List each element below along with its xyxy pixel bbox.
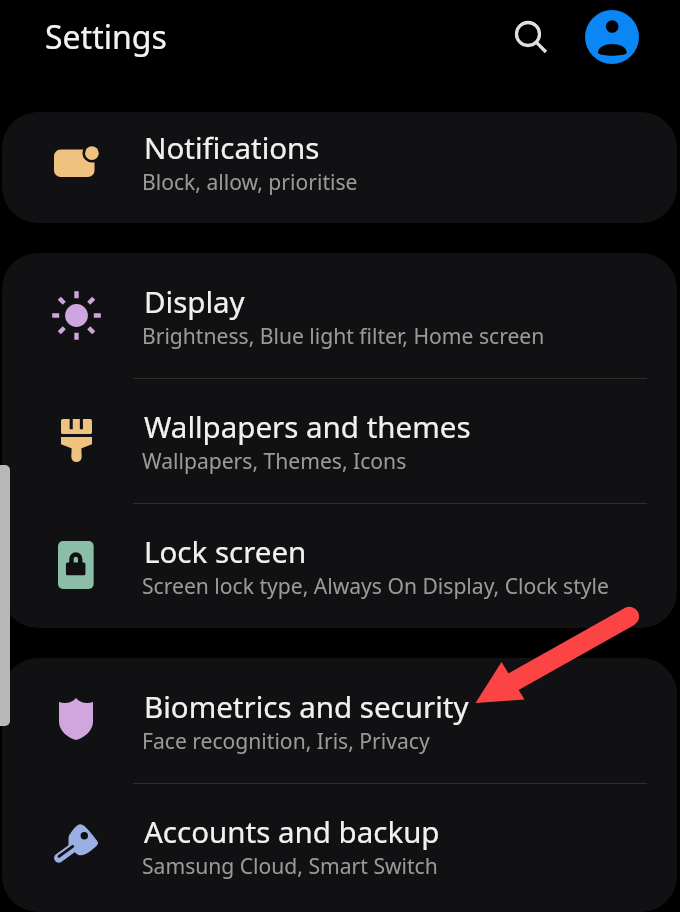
staticText: Brightness, Blue light filter, Home scre… [142, 321, 545, 350]
staticText: Samsung Cloud, Smart Switch [142, 851, 438, 880]
staticText: Display [144, 281, 245, 321]
staticText: Notifications [144, 127, 320, 167]
button[interactable]: Display [2, 253, 677, 378]
button[interactable]: Account [585, 10, 639, 64]
staticText: Lock screen [144, 531, 307, 571]
button[interactable]: Wallpapers and themes [2, 378, 677, 503]
button[interactable]: Search [503, 9, 553, 59]
button[interactable]: Lock screen [2, 503, 677, 628]
staticText: Accounts and backup [144, 811, 440, 851]
staticText: Wallpapers, Themes, Icons [142, 446, 407, 475]
staticText: Screen lock type, Always On Display, Clo… [142, 571, 609, 600]
staticText: Wallpapers and themes [144, 406, 471, 446]
button[interactable]: Notifications [2, 112, 677, 210]
staticText: Face recognition, Iris, Privacy [142, 726, 430, 755]
button[interactable]: Accounts and backup [2, 783, 677, 908]
staticText: Biometrics and security [144, 686, 469, 726]
staticText: Settings [45, 15, 167, 59]
button[interactable]: Biometrics and security [2, 658, 677, 783]
staticText: Block, allow, prioritise [142, 167, 358, 196]
